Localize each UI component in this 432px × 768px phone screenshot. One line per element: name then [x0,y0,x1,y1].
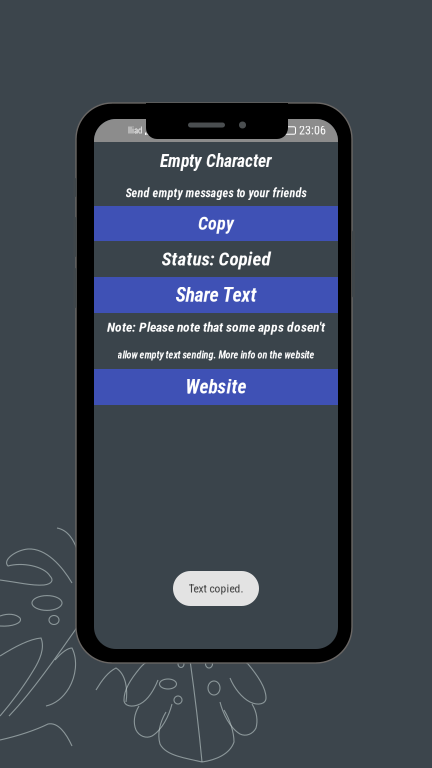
staticText: Text copied. [188,582,243,595]
button[interactable]: Text copied. [173,571,259,606]
button[interactable]: Copy [94,206,338,241]
staticText: Note: Please note that some apps dosen't [107,319,325,335]
staticText: Status: Copied [161,248,270,270]
staticText: allow empty text sending. More info on t… [117,349,314,361]
staticText: Send empty messages to your friends [125,186,306,200]
staticText: 23:06 [299,123,326,138]
staticText: Website [185,376,246,398]
button[interactable]: Share Text [94,277,338,313]
button[interactable]: Website [94,369,338,405]
staticText: lliad [128,125,142,136]
staticText: Empty Character [160,151,272,171]
staticText: Copy [198,213,234,234]
staticText: Share Text [175,283,256,307]
